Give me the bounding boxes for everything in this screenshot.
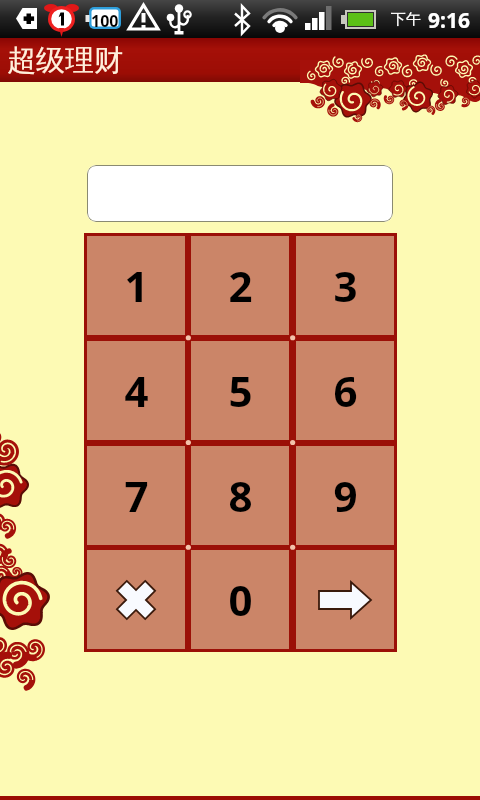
- staticText: 7: [124, 467, 149, 524]
- button[interactable]: 0: [191, 550, 289, 649]
- button[interactable]: Enter: [296, 550, 394, 649]
- button[interactable]: 8: [191, 446, 289, 545]
- staticText: 6: [333, 362, 358, 419]
- button[interactable]: 6: [296, 341, 394, 440]
- button[interactable]: 9: [296, 446, 394, 545]
- staticText: 2: [228, 257, 253, 314]
- button[interactable]: [87, 165, 393, 222]
- button[interactable]: Clear: [87, 550, 185, 649]
- staticText: 8: [228, 467, 253, 524]
- staticText: 超级理财: [7, 42, 123, 79]
- button[interactable]: 2: [191, 236, 289, 335]
- staticText: 0: [228, 571, 253, 628]
- staticText: 3: [333, 257, 358, 314]
- button[interactable]: 5: [191, 341, 289, 440]
- button[interactable]: 1: [87, 236, 185, 335]
- button[interactable]: 4: [87, 341, 185, 440]
- staticText: 4: [124, 362, 149, 419]
- staticText: 5: [228, 362, 253, 419]
- button[interactable]: 3: [296, 236, 394, 335]
- staticText: 1: [124, 257, 149, 314]
- staticText: 9:16: [428, 6, 470, 35]
- button[interactable]: 7: [87, 446, 185, 545]
- staticText: 9: [333, 467, 358, 524]
- staticText: 下午: [391, 10, 421, 29]
- staticText: 100: [91, 10, 119, 32]
